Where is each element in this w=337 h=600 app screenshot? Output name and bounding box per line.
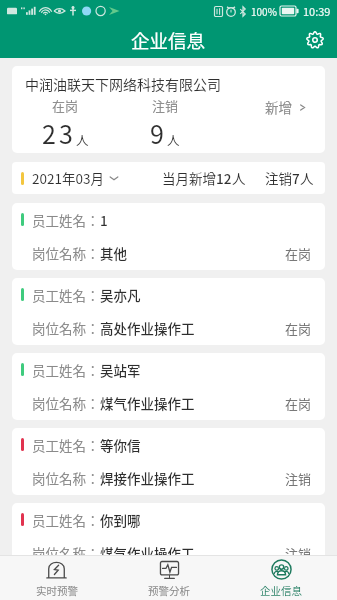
- staticText: 岗位名称：: [32, 393, 100, 413]
- staticText: 你到哪: [100, 510, 141, 530]
- staticText: 企业信息: [260, 583, 302, 598]
- staticText: 人: [76, 130, 89, 148]
- button[interactable]: Settings: [301, 26, 329, 54]
- staticText: 煤气作业操作工: [100, 543, 195, 563]
- staticText: 在岗: [285, 394, 312, 413]
- staticText: 实时预警: [36, 583, 78, 598]
- button[interactable]: 实时预警: [0, 556, 113, 600]
- button[interactable]: 员工姓名：: [12, 278, 325, 345]
- staticText: 在岗: [52, 96, 79, 115]
- button[interactable]: 员工姓名：: [12, 203, 325, 270]
- button[interactable]: 企业信息: [225, 556, 337, 600]
- staticText: 注销: [285, 469, 312, 488]
- staticText: 员工姓名：: [32, 510, 100, 530]
- staticText: 其他: [100, 243, 127, 263]
- button[interactable]: 员工姓名：: [12, 353, 325, 420]
- staticText: 吴站军: [100, 360, 141, 380]
- staticText: 100%: [251, 4, 277, 18]
- staticText: 岗位名称：: [32, 468, 100, 488]
- staticText: 9: [150, 115, 167, 151]
- button[interactable]: 2021年03月: [32, 168, 119, 188]
- staticText: 在岗: [285, 319, 312, 338]
- staticText: 岗位名称：: [32, 318, 100, 338]
- staticText: 员工姓名：: [32, 360, 100, 380]
- button[interactable]: 预警分析: [113, 556, 225, 600]
- button[interactable]: 新增: [265, 96, 315, 117]
- staticText: 岗位名称：: [32, 243, 100, 263]
- staticText: 1: [100, 210, 108, 230]
- staticText: 煤气作业操作工: [100, 393, 195, 413]
- staticText: 预警分析: [148, 583, 190, 598]
- staticText: 员工姓名：: [32, 285, 100, 305]
- staticText: 注销: [152, 96, 179, 115]
- staticText: 人: [167, 130, 180, 148]
- staticText: 23: [42, 115, 76, 151]
- staticText: 吴亦凡: [100, 285, 141, 305]
- staticText: 人: [300, 168, 314, 188]
- staticText: 焊接作业操作工: [100, 468, 195, 488]
- staticText: 企业信息: [131, 27, 206, 54]
- staticText: 岗位名称：: [32, 543, 100, 563]
- staticText: 员工姓名：: [32, 210, 100, 230]
- staticText: 注销: [265, 168, 292, 188]
- button[interactable]: 员工姓名：: [12, 428, 325, 495]
- staticText: 10:39: [303, 3, 331, 19]
- staticText: 人: [232, 168, 246, 188]
- staticText: 2021年03月: [32, 168, 104, 188]
- staticText: 当月新增: [162, 168, 216, 188]
- staticText: 12: [216, 168, 232, 188]
- staticText: 中润油联天下网络科技有限公司: [25, 74, 221, 94]
- staticText: 等你信: [100, 435, 141, 455]
- button[interactable]: 员工姓名：: [12, 503, 325, 570]
- staticText: 高处作业操作工: [100, 318, 195, 338]
- staticText: 注销: [285, 544, 312, 563]
- staticText: 员工姓名：: [32, 435, 100, 455]
- staticText: 在岗: [285, 244, 312, 263]
- staticText: 7: [292, 168, 300, 188]
- staticText: 新增: [265, 97, 292, 117]
